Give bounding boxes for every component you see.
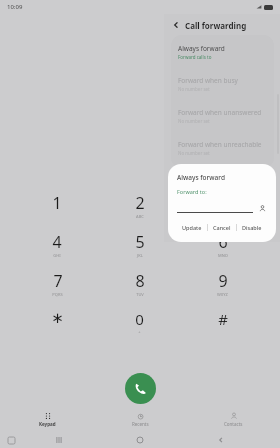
- staticText: GHI: [53, 253, 61, 258]
- button[interactable]: 7: [16, 270, 98, 309]
- button[interactable]: Call: [125, 373, 156, 404]
- staticText: Forward when unreachable: [178, 140, 262, 149]
- button[interactable]: Recent apps: [53, 434, 65, 446]
- staticText: Call forwarding: [185, 20, 247, 31]
- button[interactable]: Disable: [240, 222, 264, 233]
- staticText: No number set: [178, 150, 210, 156]
- staticText: JKL: [137, 253, 143, 258]
- button[interactable]: 3: [181, 192, 264, 231]
- staticText: 9: [218, 270, 228, 292]
- staticText: Always forward: [178, 44, 225, 53]
- button[interactable]: #: [181, 309, 264, 348]
- button[interactable]: Pick contact: [258, 204, 267, 213]
- staticText: 5: [135, 231, 145, 253]
- other: Assistant: [8, 437, 15, 444]
- staticText: 6: [218, 231, 228, 253]
- staticText: Cancel: [213, 224, 231, 231]
- staticText: Disable: [242, 224, 262, 231]
- button[interactable]: 9: [181, 270, 264, 309]
- button[interactable]: Cancel: [211, 222, 233, 233]
- staticText: TUV: [136, 292, 144, 297]
- button[interactable]: 0: [98, 309, 181, 348]
- button[interactable]: 2: [98, 192, 181, 231]
- staticText: Forward to:: [177, 188, 207, 195]
- staticText: +: [138, 329, 141, 334]
- button[interactable]: 1: [16, 192, 98, 231]
- button[interactable]: Contacts: [187, 412, 280, 427]
- staticText: Contacts: [224, 421, 243, 427]
- button[interactable]: 4: [16, 231, 98, 270]
- staticText: ∗: [51, 309, 64, 326]
- button[interactable]: ∗: [16, 309, 98, 348]
- button[interactable]: Recents: [94, 412, 187, 427]
- button[interactable]: 8: [98, 270, 181, 309]
- staticText: 2: [135, 192, 145, 214]
- button[interactable]: Always forward: [171, 35, 274, 68]
- button[interactable]: Forward when unreachable: [171, 132, 274, 164]
- staticText: 10:09: [7, 3, 23, 11]
- staticText: ABC: [136, 214, 144, 219]
- staticText: Recents: [132, 421, 149, 427]
- staticText: Always forward: [177, 173, 225, 182]
- staticText: Forward when unanswered: [178, 108, 262, 117]
- button[interactable]: 6: [181, 231, 264, 270]
- staticText: No number set: [178, 86, 210, 92]
- staticText: 0: [135, 309, 144, 329]
- button[interactable]: Back: [215, 434, 227, 446]
- staticText: #: [218, 309, 228, 329]
- staticText: 4: [52, 231, 62, 253]
- staticText: No number set: [178, 118, 210, 124]
- staticText: Keypad: [39, 421, 56, 427]
- staticText: 3: [218, 192, 228, 214]
- staticText: 1: [52, 192, 62, 214]
- staticText: PQRS: [52, 292, 63, 297]
- button[interactable]: Home: [134, 434, 146, 446]
- button[interactable]: Back: [170, 19, 182, 31]
- staticText: Forward calls to: [178, 54, 212, 60]
- staticText: WXYZ: [217, 292, 228, 297]
- button[interactable]: 5: [98, 231, 181, 270]
- staticText: 8: [135, 270, 145, 292]
- button[interactable]: Keypad: [0, 412, 94, 427]
- button[interactable]: Forward when unanswered: [171, 100, 274, 132]
- button[interactable]: Update: [180, 222, 204, 233]
- staticText: MNO: [218, 253, 228, 258]
- staticText: Forward when busy: [178, 76, 238, 85]
- button[interactable]: Forward when busy: [171, 68, 274, 100]
- staticText: 7: [53, 270, 63, 292]
- staticText: Update: [182, 224, 202, 231]
